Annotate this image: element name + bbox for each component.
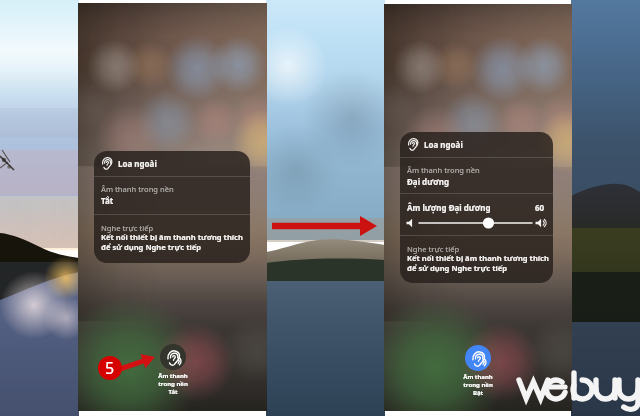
staticText: Nghe trực tiếp [407,244,460,254]
staticText: Âm thanh trong nền [407,165,480,175]
staticText: Âm lượng Đại dương [407,202,491,213]
staticText: Âm thanh trong nền Tắt [158,372,188,396]
staticText: Kết nối thiết bị âm thanh tương thích để… [407,253,549,273]
staticText: Nghe trực tiếp [101,223,154,233]
staticText: Loa ngoài [424,139,463,150]
staticText: Loa ngoài [118,158,157,169]
button[interactable]: Âm thanh trong nền [143,344,203,396]
staticText: Tắt [101,195,114,206]
staticText: Âm thanh trong nền Bật [463,373,493,397]
staticText: 60 [535,202,545,213]
staticText: Đại dương [407,176,449,187]
staticText: Kết nối thiết bị âm thanh tương thích để… [101,232,243,252]
staticText: 5 [105,357,115,379]
button[interactable]: Âm thanh trong nền [448,345,508,397]
staticText: Âm thanh trong nền [101,184,174,194]
